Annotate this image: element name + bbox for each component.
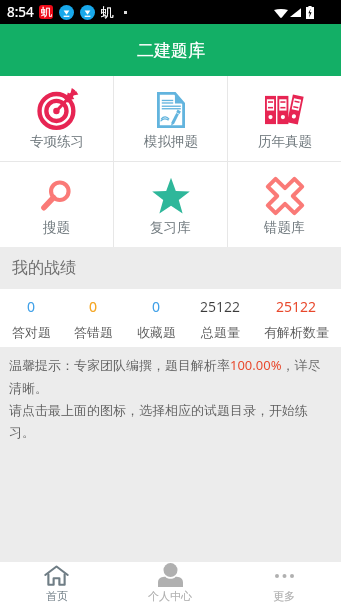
- staticText: 25122: [200, 297, 241, 316]
- button[interactable]: 0: [137, 289, 176, 347]
- staticText: 错题库: [264, 219, 305, 236]
- button[interactable]: Profile: [113, 562, 227, 606]
- button[interactable]: 模拟押题: [114, 76, 227, 161]
- button[interactable]: 历年真题: [228, 76, 341, 161]
- staticText: 历年真题: [258, 133, 312, 150]
- button[interactable]: Home: [0, 562, 113, 606]
- staticText: 虮: [41, 5, 52, 19]
- staticText: 复习库: [150, 219, 191, 236]
- staticText: 首页: [46, 589, 68, 603]
- staticText: 专项练习: [30, 133, 84, 150]
- staticText: 二建题库: [137, 40, 205, 61]
- staticText: 虮: [101, 4, 114, 20]
- staticText: 收藏题: [137, 324, 176, 340]
- other: Profile: [158, 564, 183, 587]
- button[interactable]: More: [227, 562, 341, 606]
- button[interactable]: 错题库: [228, 162, 341, 247]
- staticText: 我的战绩: [12, 258, 76, 278]
- staticText: 答错题: [74, 324, 113, 340]
- staticText: 个人中心: [148, 589, 192, 603]
- button[interactable]: 25122: [200, 289, 241, 347]
- staticText: 模拟押题: [144, 133, 198, 150]
- button[interactable]: 复习库: [114, 162, 227, 247]
- staticText: 8:54: [7, 3, 34, 21]
- button[interactable]: 25122: [264, 289, 329, 347]
- staticText: 更多: [273, 589, 295, 603]
- staticText: 25122: [276, 297, 317, 316]
- button[interactable]: 0: [74, 289, 113, 347]
- button[interactable]: 专项练习: [0, 76, 113, 161]
- staticText: 0: [89, 297, 98, 316]
- staticText: 答对题: [12, 324, 51, 340]
- button[interactable]: 搜题: [0, 162, 113, 247]
- staticText: 搜题: [43, 219, 70, 236]
- other: More: [275, 572, 294, 580]
- staticText: 温馨提示：专家团队编撰，题目解析率100.00%，详尽清晰。 请点击最上面的图标…: [9, 356, 332, 441]
- button[interactable]: 0: [12, 289, 51, 347]
- staticText: 0: [152, 297, 161, 316]
- staticText: 有解析数量: [264, 324, 329, 340]
- staticText: 总题量: [201, 324, 240, 340]
- staticText: 0: [27, 297, 36, 316]
- other: Home: [44, 565, 69, 586]
